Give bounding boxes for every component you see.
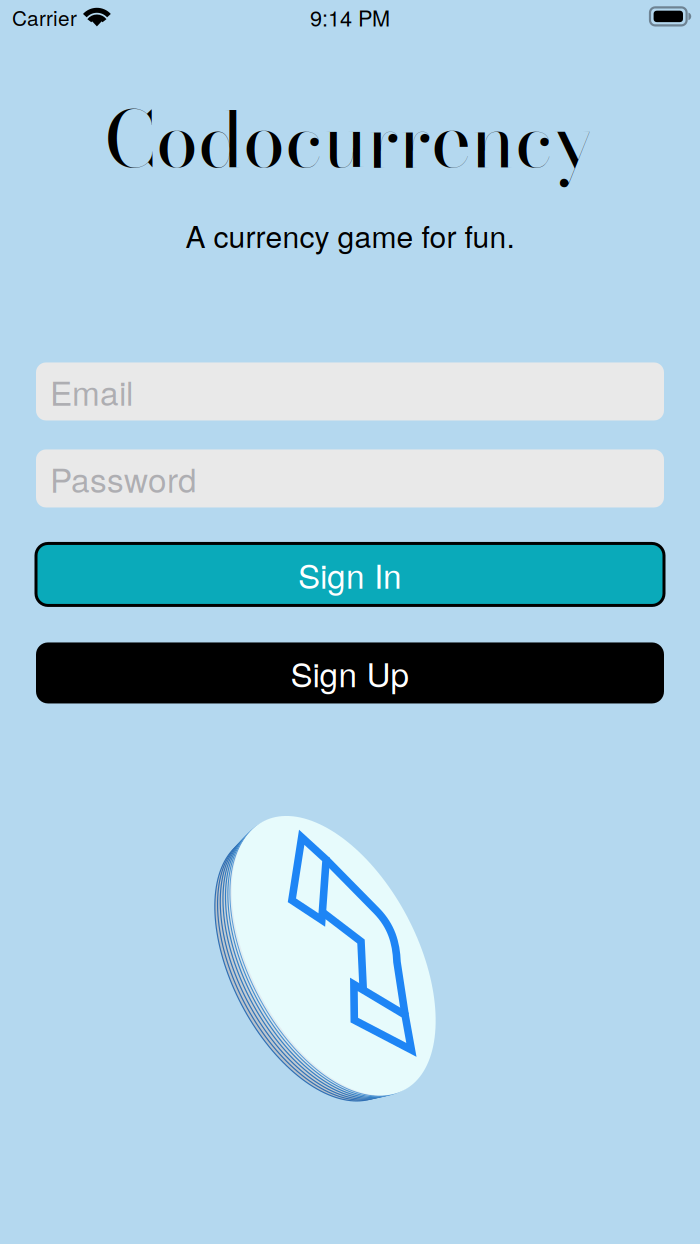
- staticText: Email: [50, 368, 133, 415]
- staticText: 9:14 PM: [310, 1, 390, 32]
- button[interactable]: Sign Up: [0, 642, 700, 703]
- staticText: Carrier: [12, 2, 77, 32]
- staticText: Codocurrency: [105, 82, 595, 197]
- button[interactable]: Sign In: [0, 543, 700, 605]
- staticText: A currency game for fun.: [185, 213, 514, 256]
- staticText: Sign Up: [290, 649, 409, 697]
- staticText: Password: [50, 455, 197, 502]
- staticText: Sign In: [298, 551, 402, 598]
